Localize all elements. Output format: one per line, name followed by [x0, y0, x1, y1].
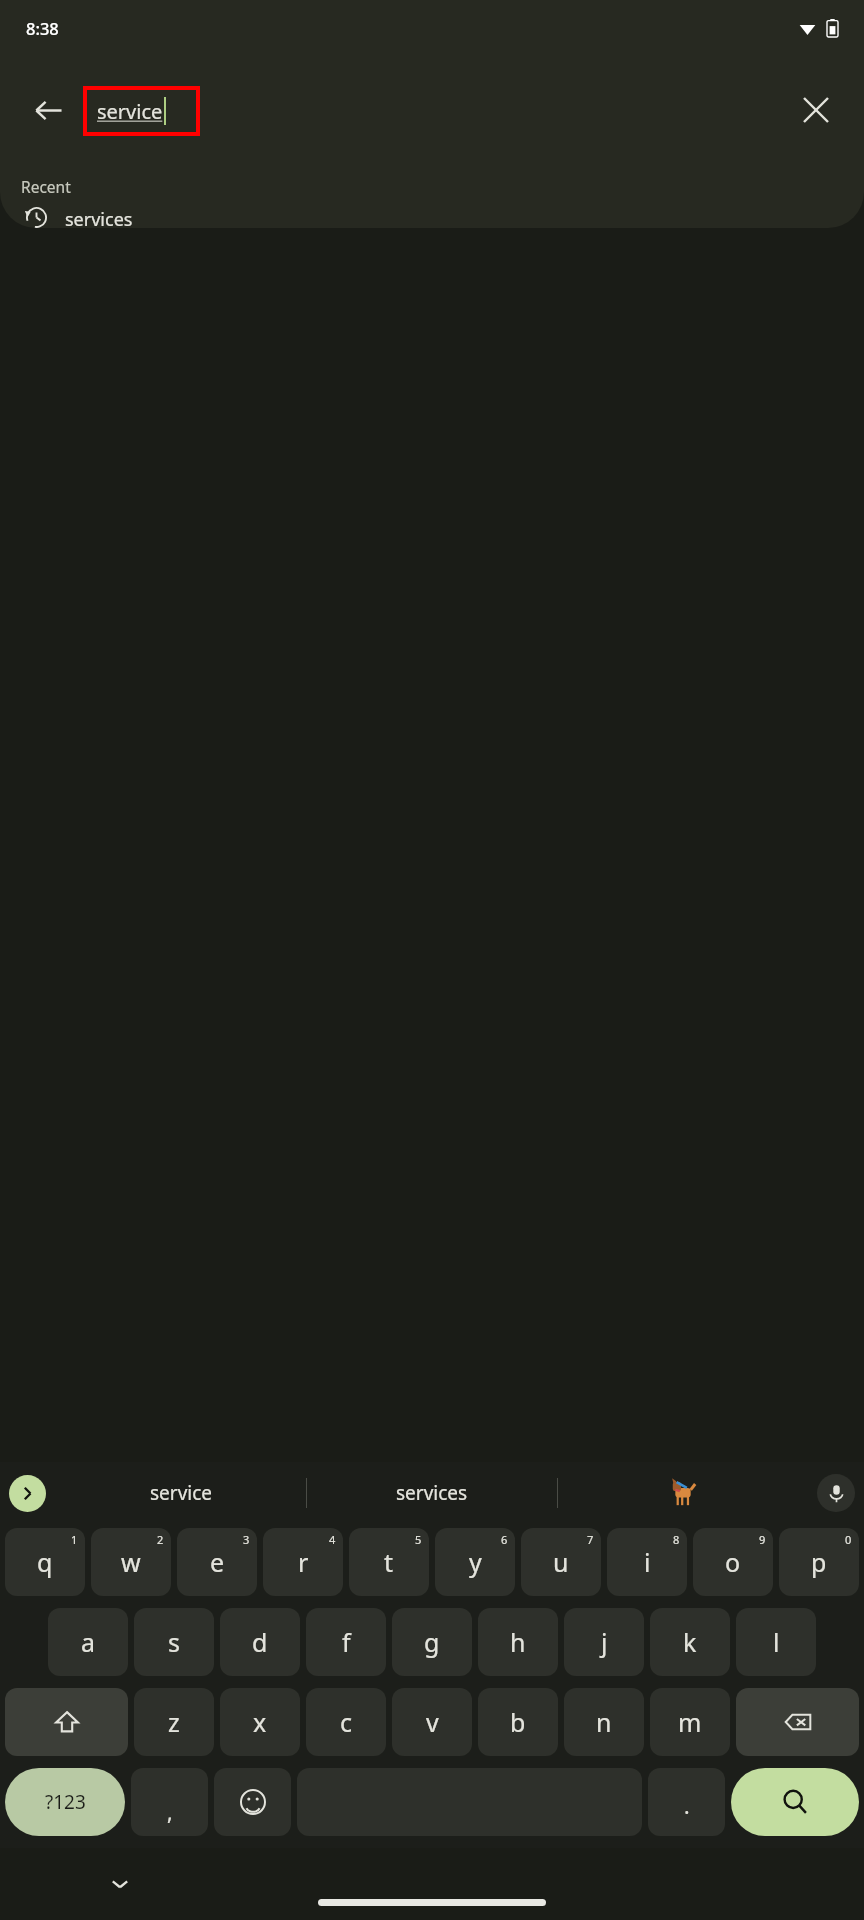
staticText: k [683, 1625, 697, 1659]
staticText: p [811, 1545, 827, 1579]
button[interactable]: f [306, 1608, 386, 1676]
button[interactable]: Backspace [736, 1688, 859, 1756]
staticText: service [150, 1480, 213, 1506]
button[interactable]: z [134, 1688, 214, 1756]
button[interactable]: k [650, 1608, 730, 1676]
button[interactable]: . [648, 1768, 725, 1836]
staticText: c [340, 1705, 353, 1739]
button[interactable]: p [779, 1528, 859, 1596]
button[interactable]: service [56, 1462, 306, 1524]
staticText: 5 [415, 1532, 422, 1547]
button[interactable]: Back [26, 88, 70, 132]
button[interactable]: a [48, 1608, 128, 1676]
staticText: y [469, 1545, 482, 1579]
button[interactable]: ?123 [5, 1768, 125, 1836]
staticText: 8 [673, 1532, 680, 1547]
staticText: 7 [587, 1532, 594, 1547]
staticText: v [426, 1705, 439, 1739]
staticText: x [253, 1705, 267, 1739]
staticText: 8:38 [26, 17, 59, 39]
button[interactable]: Search [731, 1768, 859, 1836]
staticText: e [210, 1545, 225, 1579]
button[interactable]: Shift [5, 1688, 128, 1756]
button[interactable] [558, 1462, 808, 1524]
staticText: w [121, 1545, 141, 1579]
staticText: q [37, 1545, 53, 1579]
staticText: t [384, 1545, 394, 1579]
button[interactable]: service [85, 88, 198, 134]
staticText: b [510, 1705, 526, 1739]
button[interactable]: d [220, 1608, 300, 1676]
button[interactable]: o [693, 1528, 773, 1596]
button[interactable]: w [91, 1528, 171, 1596]
button[interactable]: c [306, 1688, 386, 1756]
staticText: , [167, 1798, 173, 1827]
staticText: a [81, 1625, 96, 1659]
staticText: 4 [329, 1532, 336, 1547]
button[interactable]: services [0, 207, 864, 228]
staticText: j [601, 1625, 608, 1659]
button[interactable]: m [650, 1688, 730, 1756]
staticText: h [510, 1625, 526, 1659]
staticText: d [252, 1625, 268, 1659]
staticText: 6 [501, 1532, 508, 1547]
staticText: n [596, 1705, 612, 1739]
staticText: 1 [71, 1532, 78, 1547]
button[interactable]: services [307, 1462, 557, 1524]
staticText: 2 [157, 1532, 164, 1547]
button[interactable]: h [478, 1608, 558, 1676]
button[interactable]: Hide keyboard [100, 1864, 140, 1904]
staticText: 0 [845, 1532, 852, 1547]
staticText: 9 [759, 1532, 766, 1547]
button[interactable]: l [736, 1608, 816, 1676]
button[interactable]: n [564, 1688, 644, 1756]
button[interactable]: q [5, 1528, 85, 1596]
staticText: service [97, 98, 163, 125]
button[interactable]: u [521, 1528, 601, 1596]
button[interactable]: Voice input [817, 1474, 855, 1512]
button[interactable]: r [263, 1528, 343, 1596]
staticText: u [553, 1545, 569, 1579]
button[interactable]: s [134, 1608, 214, 1676]
button[interactable]: j [564, 1608, 644, 1676]
button[interactable]: e [177, 1528, 257, 1596]
staticText: z [168, 1705, 180, 1739]
staticText: ?123 [45, 1789, 86, 1815]
staticText: 3 [243, 1532, 250, 1547]
staticText: g [424, 1625, 440, 1659]
button[interactable]: x [220, 1688, 300, 1756]
button[interactable]: i [607, 1528, 687, 1596]
staticText: i [644, 1545, 651, 1579]
button[interactable]: Emoji [214, 1768, 291, 1836]
staticText: services [65, 207, 133, 228]
button[interactable]: y [435, 1528, 515, 1596]
button[interactable]: v [392, 1688, 472, 1756]
staticText: . [684, 1792, 690, 1821]
button[interactable]: g [392, 1608, 472, 1676]
staticText: r [298, 1545, 309, 1579]
button[interactable]: , [131, 1768, 208, 1836]
staticText: Recent [21, 176, 71, 197]
staticText: services [396, 1480, 468, 1506]
staticText: s [168, 1625, 180, 1659]
staticText: o [725, 1545, 741, 1579]
staticText: f [342, 1625, 351, 1659]
button[interactable]: More suggestions [9, 1475, 46, 1512]
button[interactable]: Clear search [794, 88, 838, 132]
button[interactable]: t [349, 1528, 429, 1596]
button[interactable]: b [478, 1688, 558, 1756]
staticText: m [678, 1705, 702, 1739]
staticText: l [773, 1625, 780, 1659]
